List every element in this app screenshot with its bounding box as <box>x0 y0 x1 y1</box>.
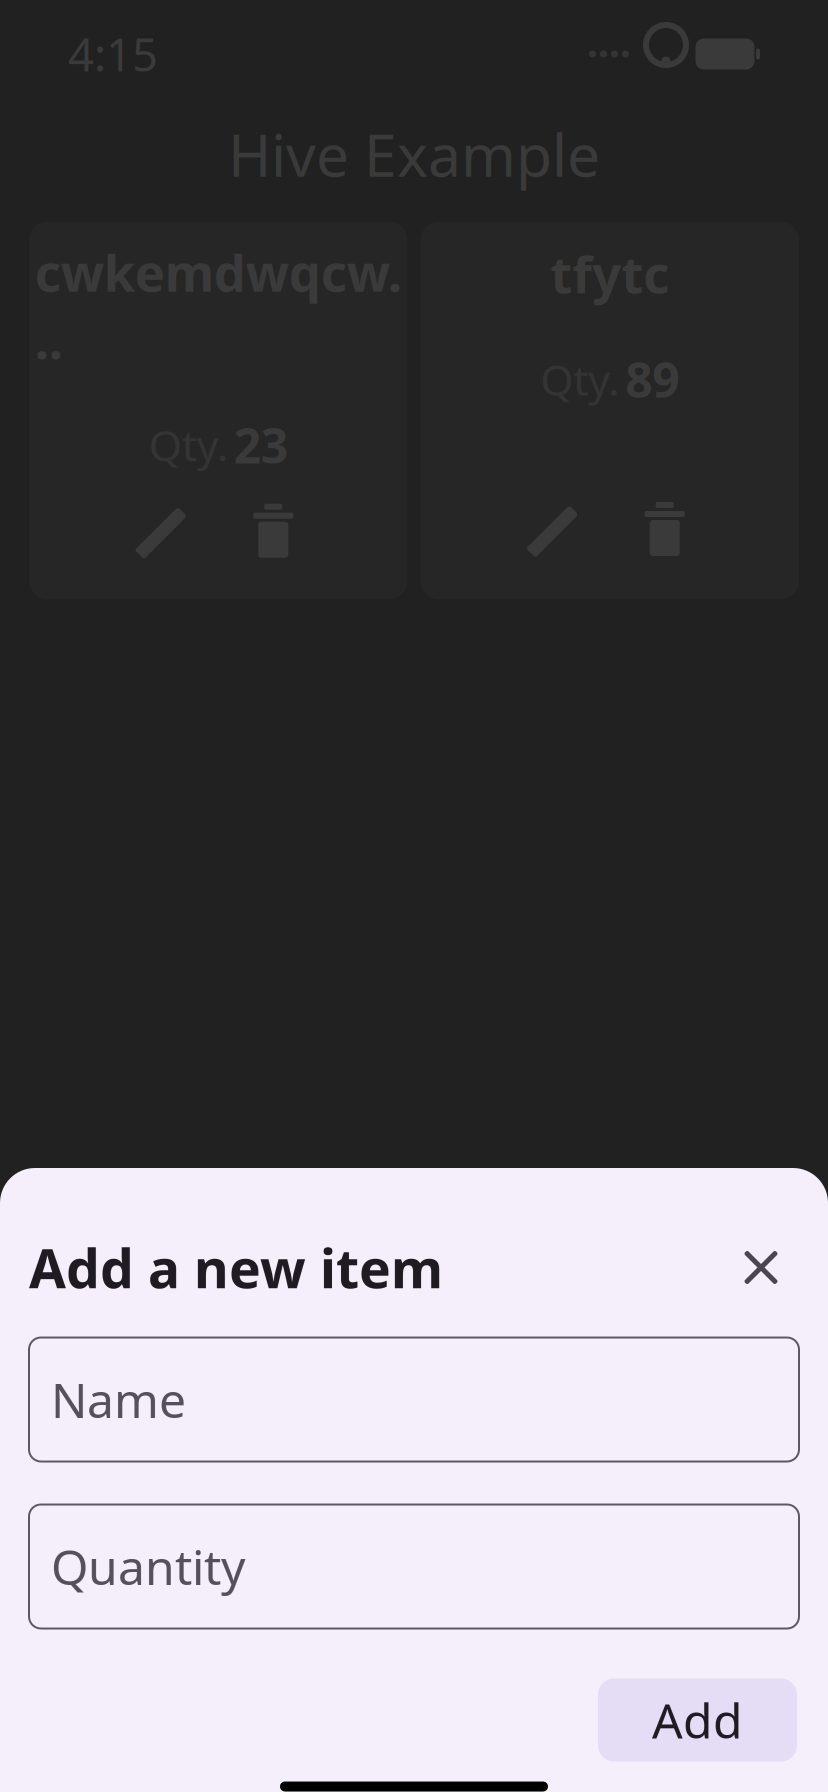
button[interactable]: Quantity <box>29 1504 799 1628</box>
staticText: 4:15 <box>68 24 158 84</box>
button[interactable]: Delete item <box>610 483 720 575</box>
staticText: Add a new item <box>29 1232 443 1303</box>
staticText: Qty. <box>540 351 619 407</box>
staticText: Add <box>652 1688 743 1752</box>
button[interactable]: Close <box>723 1229 799 1305</box>
staticText: Name <box>51 1368 186 1431</box>
button[interactable]: Edit item <box>500 483 610 575</box>
button[interactable]: Add <box>598 1678 797 1761</box>
button[interactable]: Edit item <box>108 485 218 577</box>
staticText: Hive Example <box>228 115 600 193</box>
staticText: Quantity <box>51 1535 245 1598</box>
button[interactable]: Name <box>29 1337 799 1461</box>
button[interactable]: Delete item <box>218 485 328 577</box>
staticText: Qty. <box>149 416 228 473</box>
staticText: cwkemdwqcw... <box>35 238 402 373</box>
staticText: 23 <box>234 413 288 477</box>
staticText: 89 <box>625 347 679 411</box>
staticText: tfytc <box>550 240 669 307</box>
